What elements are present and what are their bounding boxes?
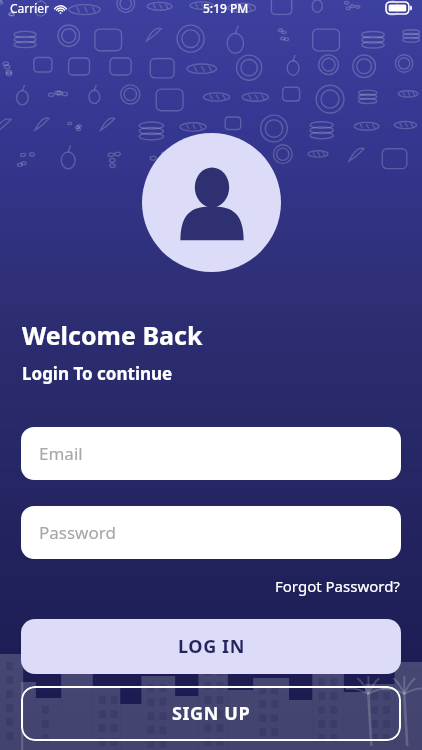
staticText: SIGN UP xyxy=(172,701,251,726)
button[interactable]: SIGN UP xyxy=(21,686,401,741)
staticText: Carrier xyxy=(10,0,50,16)
staticText: 5:19 PM xyxy=(203,0,249,16)
staticText: Welcome Back xyxy=(22,318,203,352)
staticText: Login To continue xyxy=(22,362,173,385)
staticText: LOG IN xyxy=(178,634,245,659)
staticText: Forgot Password? xyxy=(275,576,400,596)
staticText: Password xyxy=(39,521,116,544)
staticText: Email xyxy=(39,442,83,465)
button[interactable]: Password xyxy=(21,506,401,559)
button[interactable]: Email xyxy=(21,427,401,480)
button[interactable]: LOG IN xyxy=(21,619,401,674)
button[interactable]: Forgot Password? xyxy=(271,573,404,599)
